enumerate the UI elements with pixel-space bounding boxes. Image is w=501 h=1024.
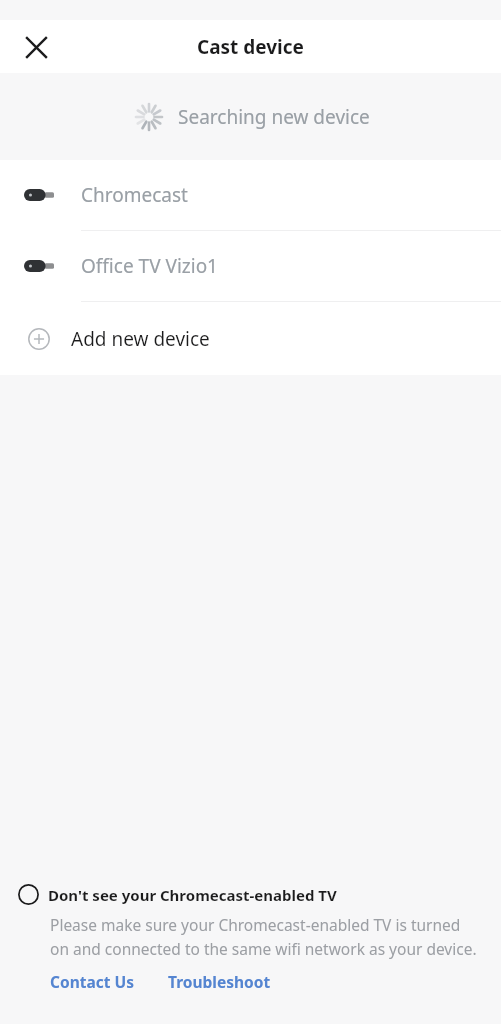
button[interactable]: Troubleshoot bbox=[168, 971, 271, 992]
button[interactable]: Add new device bbox=[0, 302, 501, 375]
staticText: Please make sure your Chromecast-enabled… bbox=[50, 914, 481, 959]
button[interactable]: Contact Us bbox=[50, 971, 134, 992]
staticText: Cast device bbox=[197, 34, 304, 60]
button[interactable]: Chromecast bbox=[0, 160, 501, 230]
button[interactable]: Office TV Vizio1 bbox=[0, 231, 501, 301]
staticText: Add new device bbox=[71, 326, 210, 352]
staticText: Office TV Vizio1 bbox=[81, 253, 218, 279]
staticText: Troubleshoot bbox=[168, 971, 271, 992]
staticText: Contact Us bbox=[50, 971, 134, 992]
staticText: Searching new device bbox=[178, 104, 370, 130]
button[interactable]: Close bbox=[16, 27, 56, 67]
staticText: Chromecast bbox=[81, 182, 188, 208]
staticText: Don't see your Chromecast-enabled TV bbox=[48, 885, 337, 905]
